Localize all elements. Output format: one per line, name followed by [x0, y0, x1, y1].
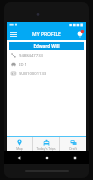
button[interactable]: Draft: [60, 137, 86, 151]
staticText: Today's Trips: [36, 147, 56, 151]
button[interactable]: ID 1: [7, 60, 86, 69]
staticText: ID 1: [19, 62, 27, 68]
button[interactable]: Edward Will: [9, 42, 84, 50]
staticText: 9488447733: [19, 53, 43, 59]
button[interactable]: Recent apps: [61, 151, 89, 164]
button[interactable]: 9488447733: [7, 51, 86, 60]
button[interactable]: Map: [7, 137, 32, 151]
button[interactable]: Notifications: [74, 28, 86, 40]
button[interactable]: SUB10001133: [7, 69, 86, 78]
button[interactable]: Open navigation menu: [7, 28, 19, 40]
staticText: Draft: [69, 147, 77, 151]
button[interactable]: Back: [4, 151, 33, 164]
staticText: Edward Will: [33, 43, 60, 49]
staticText: SUB10001133: [19, 71, 47, 77]
button[interactable]: Today's Trips: [33, 137, 59, 151]
button[interactable]: Home: [33, 151, 61, 164]
staticText: Map: [16, 147, 23, 151]
staticText: MY PROFILE: [32, 31, 61, 38]
